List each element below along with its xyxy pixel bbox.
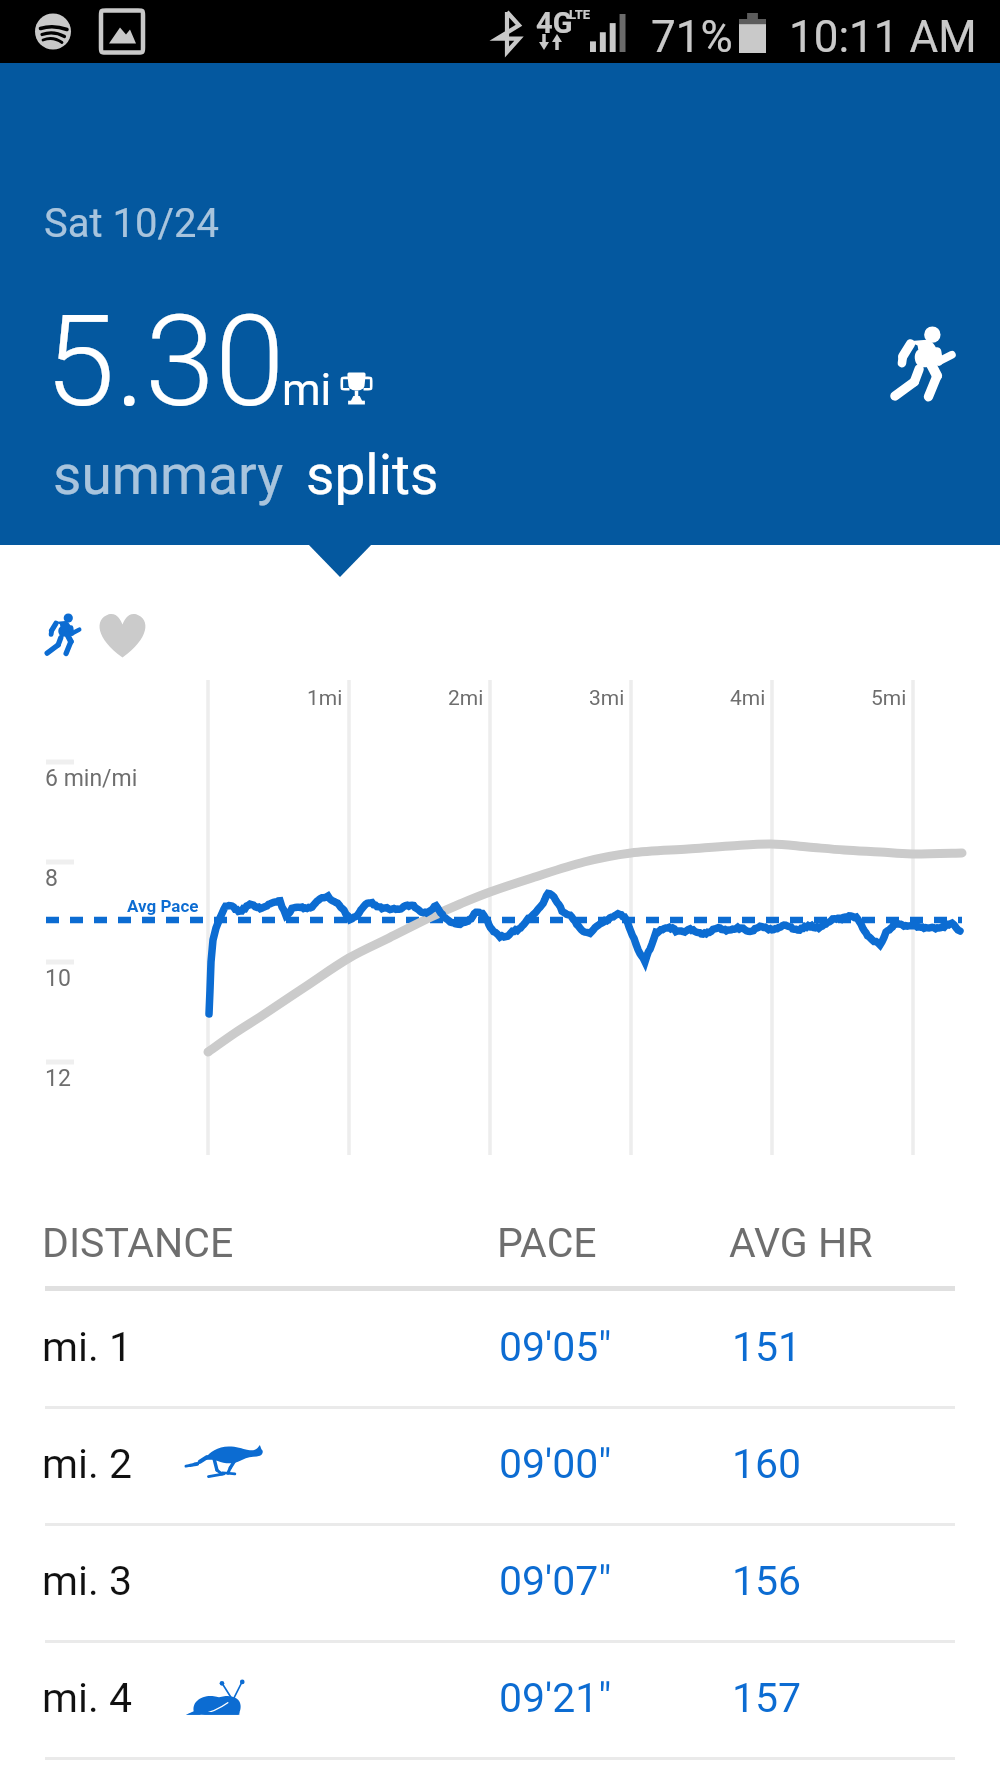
staticText: 160 [732, 1440, 802, 1488]
staticText: 09'00" [499, 1440, 612, 1488]
staticText: 09'05" [499, 1323, 612, 1371]
staticText: 12 [45, 1065, 71, 1092]
staticText: 5.30 [45, 288, 285, 436]
button[interactable]: Pace graph [41, 608, 85, 656]
staticText: 157 [732, 1674, 802, 1722]
staticText: 10:11 AM [789, 11, 977, 63]
staticText: mi. 2 [42, 1440, 132, 1488]
staticText: summary [53, 443, 284, 507]
staticText: 09'21" [499, 1674, 612, 1722]
staticText: 09'07" [499, 1557, 612, 1605]
button[interactable]: mi. 4 [0, 1642, 1000, 1759]
staticText: 1mi [307, 686, 343, 711]
staticText: 156 [732, 1557, 802, 1605]
button[interactable]: mi. 2 [0, 1408, 1000, 1525]
staticText: 3mi [589, 686, 625, 711]
staticText: 10 [45, 965, 71, 992]
button[interactable]: summary [53, 443, 284, 507]
staticText: PACE [497, 1219, 597, 1267]
staticText: 2mi [448, 686, 484, 711]
button[interactable]: mi. 3 [0, 1525, 1000, 1642]
staticText: AVG HR [729, 1219, 873, 1267]
staticText: DISTANCE [42, 1219, 234, 1267]
staticText: 6 min/mi [45, 765, 138, 792]
button[interactable]: Heart rate graph [95, 611, 150, 659]
staticText: Avg Pace [127, 896, 199, 916]
button[interactable]: mi. 1 [0, 1291, 1000, 1408]
staticText: mi [282, 364, 332, 416]
staticText: mi. 4 [42, 1674, 132, 1722]
button[interactable]: Running activity [884, 317, 962, 401]
staticText: 8 [45, 865, 58, 892]
staticText: splits [306, 443, 439, 507]
staticText: mi. 1 [42, 1323, 132, 1371]
button[interactable]: splits [306, 443, 439, 507]
staticText: mi. 3 [42, 1557, 132, 1605]
staticText: 4mi [730, 686, 766, 711]
staticText: 151 [732, 1323, 802, 1371]
staticText: Sat 10/24 [44, 200, 219, 247]
staticText: 5mi [871, 686, 907, 711]
staticText: LTE [569, 7, 591, 22]
staticText: 71% [651, 11, 733, 63]
staticText: 4G [536, 6, 573, 40]
